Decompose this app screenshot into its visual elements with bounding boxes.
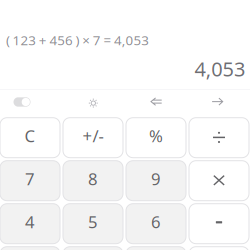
button[interactable]: C	[0, 118, 60, 158]
staticText: %	[149, 124, 163, 147]
button[interactable]: Redo	[206, 92, 230, 111]
staticText: 9	[151, 167, 161, 190]
button[interactable]: Divide	[189, 118, 249, 158]
staticText: 7	[25, 167, 35, 190]
button[interactable]: Appearance	[81, 94, 105, 113]
staticText: ( 123 + 456 ) × 7 = 4,053	[6, 31, 149, 49]
button[interactable]: Add	[189, 247, 249, 250]
button[interactable]: 8	[63, 161, 123, 201]
button[interactable]: Scientific keypad	[8, 92, 35, 111]
button[interactable]: 5	[63, 204, 123, 244]
button[interactable]: 6	[126, 204, 186, 244]
button[interactable]: 1	[0, 247, 60, 250]
staticText: 5	[88, 210, 98, 233]
button[interactable]: 2	[63, 247, 123, 250]
button[interactable]: 3	[126, 247, 186, 250]
button[interactable]: %	[126, 118, 186, 158]
button[interactable]: 9	[126, 161, 186, 201]
staticText: 8	[88, 167, 98, 190]
button[interactable]: 4	[0, 204, 60, 244]
staticText: 6	[151, 210, 161, 233]
staticText: +/-	[82, 124, 103, 147]
staticText: 4	[25, 210, 35, 233]
button[interactable]: Multiply	[189, 161, 249, 201]
staticText: 4,053	[194, 55, 245, 82]
button[interactable]: Subtract	[189, 204, 249, 244]
button[interactable]: 7	[0, 161, 60, 201]
button[interactable]: Undo	[144, 92, 168, 111]
button[interactable]: +/-	[63, 118, 123, 158]
staticText: C	[24, 124, 35, 147]
